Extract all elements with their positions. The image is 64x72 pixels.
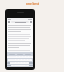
button[interactable]: Menu: [7, 20, 33, 23]
button[interactable]: Key: [10, 62, 12, 64]
button[interactable]: Key: [12, 59, 14, 61]
button[interactable]: Search: [11, 21, 29, 23]
button[interactable]: Key: [11, 56, 13, 58]
button[interactable]: Key: [12, 62, 14, 64]
button[interactable]: Key: [9, 56, 11, 58]
button[interactable]: Key: [10, 59, 12, 61]
other: Menu: [8, 21, 10, 23]
button[interactable]: Key: [8, 59, 10, 61]
button[interactable]: Key: [13, 56, 15, 58]
staticText: one best: [26, 2, 39, 6]
button[interactable]: Key: [7, 56, 9, 58]
